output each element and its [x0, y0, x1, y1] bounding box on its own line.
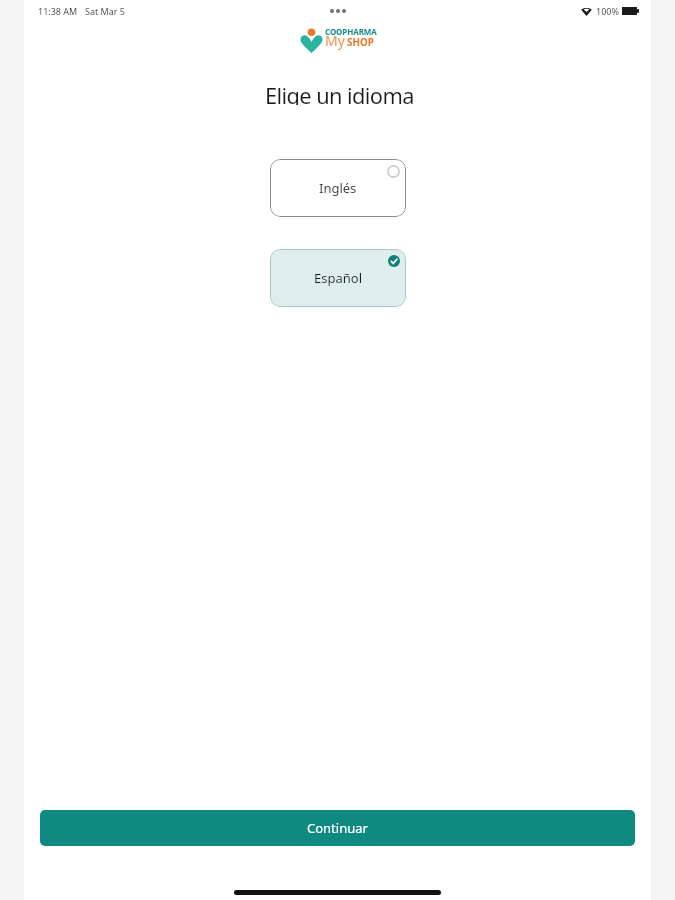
staticText: Sat Mar 5	[85, 5, 125, 17]
staticText: Continuar	[307, 819, 368, 837]
button[interactable]: Inglés	[270, 159, 406, 217]
staticText: Inglés	[319, 179, 357, 197]
staticText: Elige un idioma	[265, 81, 414, 105]
staticText: Español	[314, 269, 362, 287]
staticText: COOPHARMA	[325, 26, 377, 37]
button[interactable]: Continuar	[40, 810, 635, 846]
button[interactable]: Español	[270, 249, 406, 307]
other: Not selected	[387, 165, 400, 178]
other: Selected	[388, 255, 400, 267]
staticText: 100%	[596, 5, 619, 17]
staticText: SHOP	[347, 36, 374, 49]
staticText: 11:38 AM	[38, 5, 78, 17]
staticText: My	[325, 31, 345, 50]
